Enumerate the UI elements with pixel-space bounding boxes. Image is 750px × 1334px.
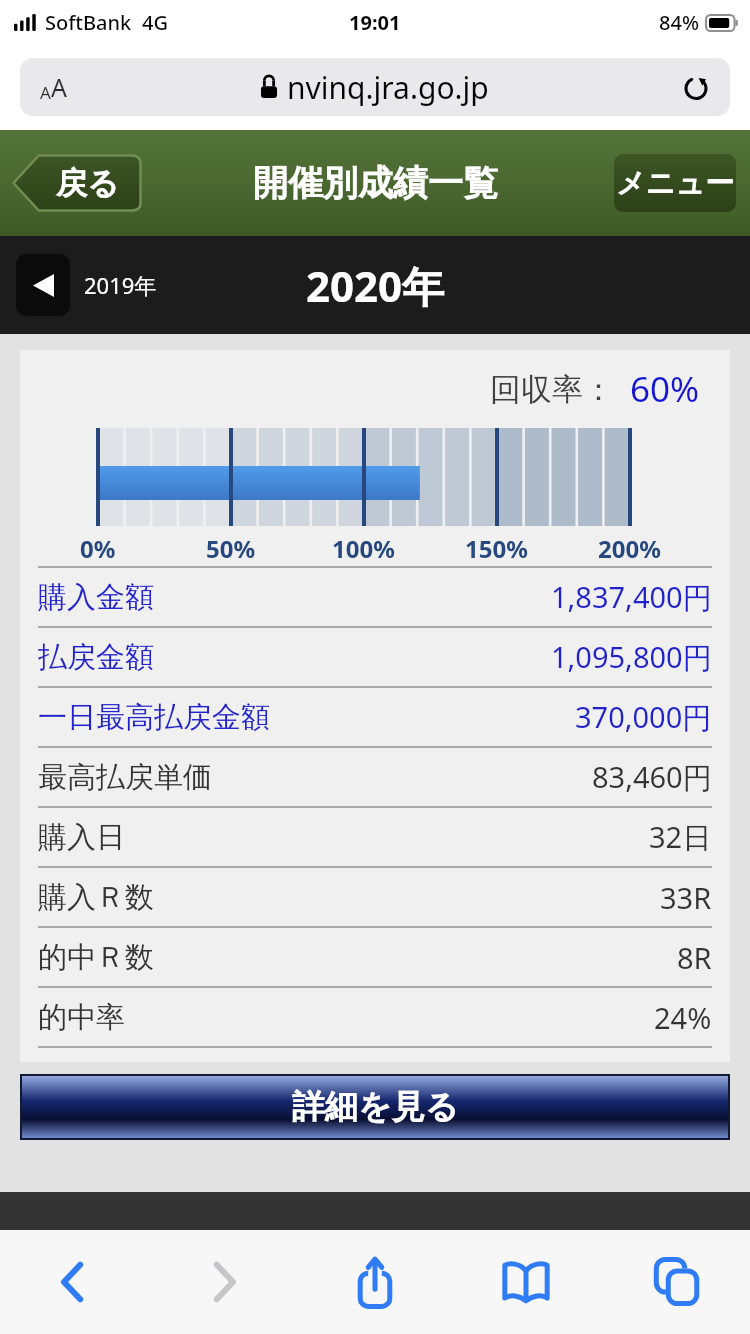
- staticText: 購入Ｒ数: [38, 879, 154, 916]
- button[interactable]: 最高払戻単価: [38, 748, 712, 806]
- staticText: 50%: [206, 532, 256, 565]
- staticText: 的中Ｒ数: [38, 939, 154, 976]
- button[interactable]: 一日最高払戻金額: [38, 688, 712, 746]
- button[interactable]: A: [20, 58, 730, 116]
- staticText: メニュー: [616, 165, 735, 202]
- staticText: 戻る: [56, 164, 119, 203]
- staticText: 8R: [677, 938, 712, 977]
- button[interactable]: 購入Ｒ数: [38, 868, 712, 926]
- staticText: 開催別成績一覧: [253, 161, 498, 205]
- staticText: 的中率: [38, 999, 125, 1036]
- staticText: 2019年: [84, 270, 157, 300]
- staticText: 200%: [598, 532, 661, 565]
- staticText: 24%: [654, 998, 712, 1037]
- staticText: 60%: [630, 365, 700, 413]
- button[interactable]: 的中率: [38, 988, 712, 1046]
- staticText: 370,000円: [575, 697, 712, 737]
- staticText: 83,460円: [592, 757, 712, 797]
- staticText: nvinq.jra.go.jp: [287, 67, 489, 108]
- staticText: 150%: [465, 532, 528, 565]
- staticText: 1,837,400円: [551, 577, 712, 617]
- button[interactable]: Bookmarks: [471, 1239, 581, 1325]
- staticText: 33R: [660, 878, 712, 917]
- staticText: A: [51, 70, 67, 104]
- staticText: 一日最高払戻金額: [38, 699, 270, 736]
- staticText: 払戻金額: [38, 639, 154, 676]
- button[interactable]: Reload: [676, 67, 716, 107]
- staticText: 100%: [332, 532, 395, 565]
- staticText: 84%: [659, 9, 699, 36]
- staticText: 19:01: [349, 9, 401, 36]
- button[interactable]: メニュー: [614, 154, 736, 212]
- button[interactable]: 購入日: [38, 808, 712, 866]
- staticText: SoftBank: [45, 9, 132, 36]
- staticText: 4G: [142, 9, 168, 36]
- staticText: A: [40, 81, 51, 104]
- button[interactable]: Previous year 2019: [16, 254, 70, 316]
- staticText: 回収率：: [490, 370, 614, 409]
- button[interactable]: Tabs: [622, 1239, 732, 1325]
- staticText: 購入日: [38, 819, 125, 856]
- staticText: 購入金額: [38, 579, 154, 616]
- button[interactable]: 戻る: [12, 154, 142, 212]
- staticText: 32日: [649, 817, 712, 857]
- staticText: 最高払戻単価: [38, 759, 212, 796]
- button[interactable]: Share: [320, 1239, 430, 1325]
- staticText: 1,095,800円: [551, 637, 712, 677]
- staticText: 2020年: [306, 257, 445, 314]
- button[interactable]: 詳細を見る: [22, 1076, 728, 1138]
- staticText: 0%: [80, 532, 116, 565]
- button[interactable]: 払戻金額: [38, 628, 712, 686]
- button[interactable]: 的中Ｒ数: [38, 928, 712, 986]
- button[interactable]: Back: [18, 1239, 128, 1325]
- button[interactable]: Forward: [169, 1239, 279, 1325]
- staticText: 詳細を見る: [292, 1086, 459, 1128]
- button[interactable]: 購入金額: [38, 568, 712, 626]
